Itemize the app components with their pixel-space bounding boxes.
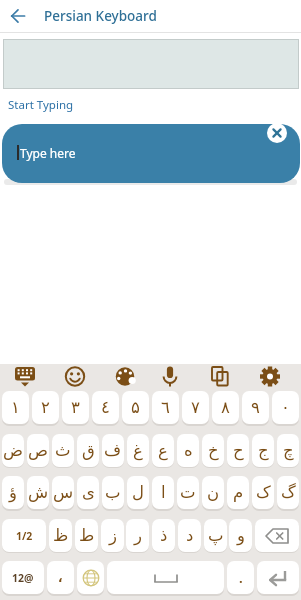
staticText: ی xyxy=(82,483,95,502)
button[interactable]: ٦ xyxy=(152,391,179,424)
staticText: ۵ xyxy=(131,398,140,417)
button[interactable]: ب xyxy=(102,476,124,509)
button[interactable]: 1/2 xyxy=(2,519,46,552)
button[interactable]: ط xyxy=(75,519,98,552)
button[interactable]: ٧ xyxy=(182,391,209,424)
button[interactable] xyxy=(107,561,224,594)
button[interactable]: ٩ xyxy=(242,391,269,424)
button[interactable] xyxy=(257,561,299,594)
button[interactable]: ث xyxy=(52,434,74,467)
button[interactable]: ز xyxy=(101,519,124,552)
staticText: خ xyxy=(208,441,219,460)
staticText: ا xyxy=(161,483,166,502)
button[interactable] xyxy=(253,363,287,390)
staticText: ط xyxy=(79,526,95,545)
staticText: ٨ xyxy=(221,398,230,417)
button[interactable]: 12@ xyxy=(2,561,44,594)
button[interactable]: ٤ xyxy=(92,391,119,424)
button[interactable]: ه xyxy=(177,434,199,467)
staticText: ز xyxy=(109,526,117,545)
button[interactable]: ٨ xyxy=(212,391,239,424)
button[interactable]: ع xyxy=(152,434,174,467)
button[interactable]: ح xyxy=(227,434,249,467)
staticText: و xyxy=(237,526,245,545)
button[interactable]: ج xyxy=(252,434,274,467)
button[interactable]: ، xyxy=(47,561,74,594)
staticText: ٧ xyxy=(191,398,200,417)
button[interactable] xyxy=(6,4,30,28)
button[interactable]: ذ xyxy=(152,519,175,552)
button[interactable]: پ xyxy=(204,519,227,552)
button[interactable]: ر xyxy=(126,519,149,552)
button[interactable] xyxy=(255,519,299,552)
staticText: ش xyxy=(28,483,49,502)
staticText: ح xyxy=(233,441,244,460)
staticText: 12@ xyxy=(12,571,34,585)
staticText: ظ xyxy=(53,526,69,545)
button[interactable]: ص xyxy=(27,434,49,467)
button[interactable]: ۵ xyxy=(122,391,149,424)
staticText: غ xyxy=(133,441,143,460)
staticText: ف xyxy=(104,441,122,460)
staticText: ل xyxy=(132,483,144,502)
staticText: گ xyxy=(281,483,296,502)
button[interactable]: ک xyxy=(252,476,274,509)
staticText: Persian Keyboard xyxy=(44,7,157,25)
staticText: ٦ xyxy=(161,398,170,417)
staticText: 1/2 xyxy=(16,529,33,543)
button[interactable]: ض xyxy=(2,434,24,467)
button[interactable] xyxy=(58,363,92,390)
button[interactable]: چ xyxy=(277,434,299,467)
staticText: ه xyxy=(184,441,193,460)
button[interactable] xyxy=(108,363,142,390)
button[interactable]: ١ xyxy=(2,391,29,424)
staticText: م xyxy=(233,483,244,502)
button[interactable]: ی xyxy=(77,476,99,509)
button[interactable] xyxy=(203,363,237,390)
button[interactable]: ٣ xyxy=(62,391,89,424)
button[interactable]: خ xyxy=(202,434,224,467)
staticText: ١ xyxy=(11,398,20,417)
button[interactable] xyxy=(8,363,42,390)
button[interactable]: س xyxy=(52,476,74,509)
button[interactable]: ل xyxy=(127,476,149,509)
button[interactable]: و xyxy=(229,519,252,552)
button[interactable]: گ xyxy=(277,476,299,509)
button[interactable] xyxy=(267,123,287,143)
staticText: ص xyxy=(28,441,48,460)
button[interactable] xyxy=(153,363,187,390)
staticText: ن xyxy=(207,483,220,502)
staticText: ر xyxy=(134,526,142,545)
staticText: ٣ xyxy=(71,398,80,417)
staticText: ؤ xyxy=(9,483,17,502)
button[interactable] xyxy=(77,561,104,594)
staticText: . xyxy=(239,569,243,587)
button[interactable]: ن xyxy=(202,476,224,509)
button[interactable]: Start Typing xyxy=(8,97,74,113)
button[interactable]: ش xyxy=(27,476,49,509)
button[interactable]: ٠ xyxy=(272,391,299,424)
staticText: ث xyxy=(55,441,71,460)
staticText: چ xyxy=(283,441,294,460)
staticText: ، xyxy=(58,571,63,585)
button[interactable]: . xyxy=(227,561,254,594)
staticText: ٠ xyxy=(281,398,290,417)
button[interactable]: ؤ xyxy=(2,476,24,509)
button[interactable]: ت xyxy=(177,476,199,509)
staticText: ٢ xyxy=(41,398,50,417)
button[interactable]: ق xyxy=(77,434,99,467)
button[interactable]: م xyxy=(227,476,249,509)
button[interactable]: غ xyxy=(127,434,149,467)
staticText: ٩ xyxy=(251,398,260,417)
staticText: س xyxy=(53,483,74,502)
button[interactable]: ظ xyxy=(49,519,72,552)
staticText: پ xyxy=(208,526,224,545)
button[interactable]: ا xyxy=(152,476,174,509)
button[interactable] xyxy=(2,124,300,183)
staticText: ج xyxy=(258,441,269,460)
staticText: ق xyxy=(82,441,95,460)
staticText: ب xyxy=(105,483,121,502)
button[interactable]: ٢ xyxy=(32,391,59,424)
button[interactable]: ف xyxy=(102,434,124,467)
button[interactable]: د xyxy=(178,519,201,552)
